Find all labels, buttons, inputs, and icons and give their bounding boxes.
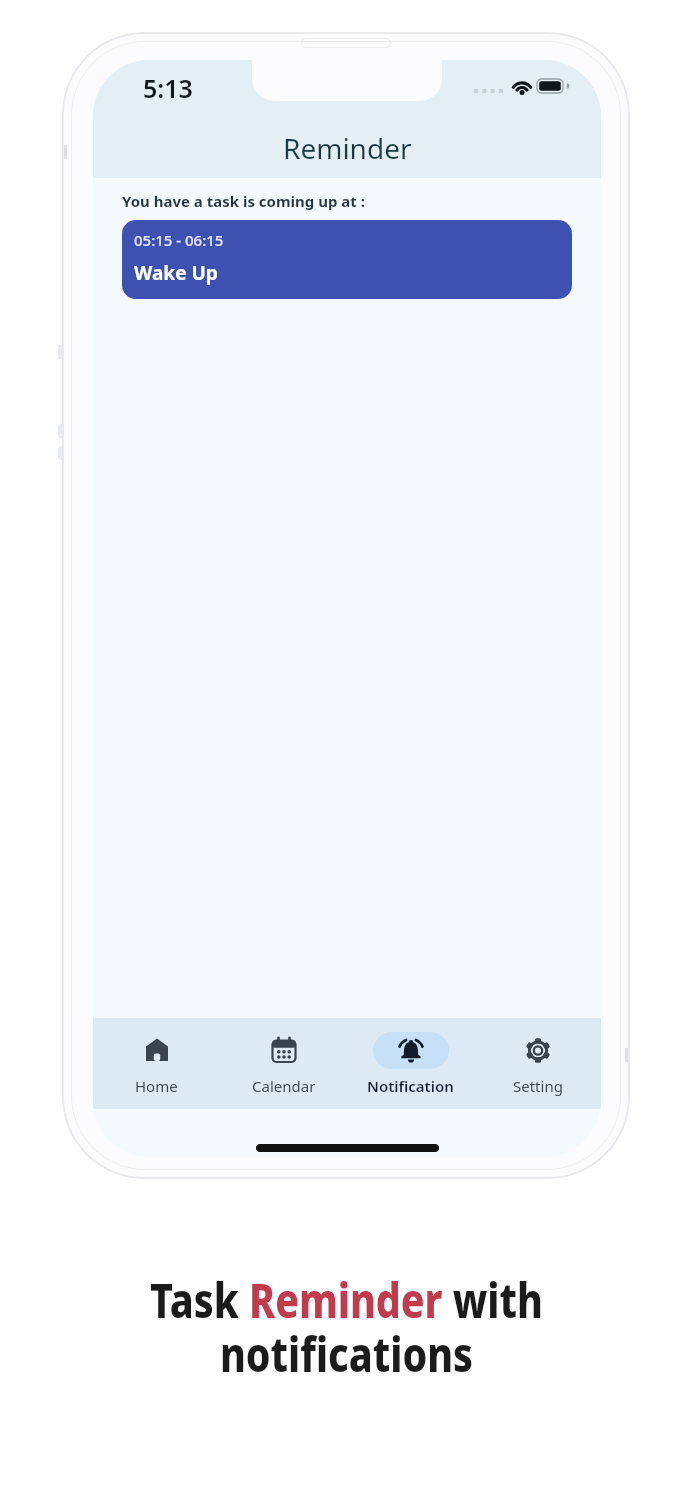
staticText: Task Reminder with notifications (63, 1267, 630, 1386)
staticText: 5:13 (143, 71, 193, 105)
staticText: Reminder (283, 129, 412, 167)
staticText: Home (135, 1076, 178, 1096)
staticText: Setting (513, 1076, 563, 1096)
staticText: You have a task is coming up at : (122, 191, 365, 211)
staticText: Calendar (252, 1076, 316, 1096)
staticText: 05:15 - 06:15 (134, 230, 224, 250)
staticText: Wake Up (134, 260, 218, 286)
staticText: Notification (367, 1076, 454, 1096)
